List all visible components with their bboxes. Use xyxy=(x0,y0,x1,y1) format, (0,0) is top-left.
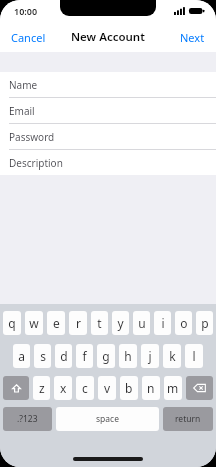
staticText: r xyxy=(76,315,81,331)
button[interactable]: z xyxy=(33,376,50,400)
button[interactable]: j xyxy=(141,344,159,368)
staticText: a xyxy=(18,348,25,364)
button[interactable]: Next xyxy=(169,24,216,51)
button[interactable]: p xyxy=(196,311,213,335)
staticText: j xyxy=(148,348,152,364)
button[interactable]: .?123 xyxy=(3,407,52,431)
button[interactable]: Password xyxy=(0,124,216,149)
staticText: Next xyxy=(180,30,205,45)
staticText: o xyxy=(180,315,188,331)
button[interactable]: t xyxy=(91,311,108,335)
staticText: q xyxy=(8,315,16,331)
button[interactable]: l xyxy=(185,344,203,368)
staticText: Email xyxy=(9,104,35,118)
staticText: p xyxy=(201,315,209,331)
staticText: New Account xyxy=(71,29,145,45)
button[interactable]: o xyxy=(175,311,192,335)
staticText: e xyxy=(53,315,60,331)
staticText: g xyxy=(102,348,110,364)
staticText: k xyxy=(169,348,176,364)
staticText: t xyxy=(97,315,102,331)
staticText: d xyxy=(60,348,68,364)
button[interactable]: w xyxy=(25,311,43,335)
button[interactable]: q xyxy=(3,311,21,335)
button[interactable]: v xyxy=(98,376,116,400)
button[interactable]: m xyxy=(164,376,182,400)
button[interactable]: h xyxy=(119,344,137,368)
button[interactable]: Email xyxy=(0,98,216,123)
button[interactable]: c xyxy=(76,376,94,400)
button[interactable]: f xyxy=(76,344,93,368)
staticText: v xyxy=(104,380,111,396)
staticText: s xyxy=(40,348,46,364)
button[interactable]: space xyxy=(56,407,159,431)
staticText: i xyxy=(161,315,165,331)
staticText: .?123 xyxy=(17,413,38,425)
staticText: z xyxy=(39,380,45,396)
button[interactable]: k xyxy=(163,344,181,368)
button[interactable]: s xyxy=(34,344,51,368)
staticText: l xyxy=(192,348,196,364)
staticText: n xyxy=(147,380,155,396)
button[interactable]: Shift xyxy=(3,376,29,400)
button[interactable]: i xyxy=(154,311,171,335)
staticText: 10:00 xyxy=(14,5,38,17)
button[interactable]: Cancel xyxy=(0,24,57,51)
staticText: c xyxy=(82,380,88,396)
staticText: Password xyxy=(9,130,55,144)
staticText: b xyxy=(125,380,133,396)
button[interactable]: b xyxy=(120,376,138,400)
staticText: m xyxy=(167,380,179,396)
staticText: Cancel xyxy=(11,30,46,45)
button[interactable]: Backspace xyxy=(186,376,213,400)
button[interactable]: g xyxy=(97,344,115,368)
staticText: Description xyxy=(9,156,63,170)
button[interactable]: Name xyxy=(0,72,216,97)
button[interactable]: x xyxy=(54,376,72,400)
button[interactable]: r xyxy=(69,311,87,335)
button[interactable]: y xyxy=(112,311,129,335)
staticText: w xyxy=(29,315,39,331)
button[interactable]: a xyxy=(13,344,30,368)
staticText: h xyxy=(124,348,132,364)
staticText: f xyxy=(82,348,87,364)
button[interactable]: d xyxy=(55,344,72,368)
staticText: x xyxy=(60,380,67,396)
staticText: space xyxy=(96,413,119,425)
staticText: u xyxy=(138,315,146,331)
staticText: return xyxy=(175,413,201,425)
button[interactable]: Description xyxy=(0,150,216,175)
button[interactable]: return xyxy=(163,407,213,431)
button[interactable]: e xyxy=(47,311,65,335)
staticText: y xyxy=(117,315,124,331)
button[interactable]: n xyxy=(142,376,160,400)
staticText: Name xyxy=(9,78,38,92)
button[interactable]: u xyxy=(133,311,150,335)
